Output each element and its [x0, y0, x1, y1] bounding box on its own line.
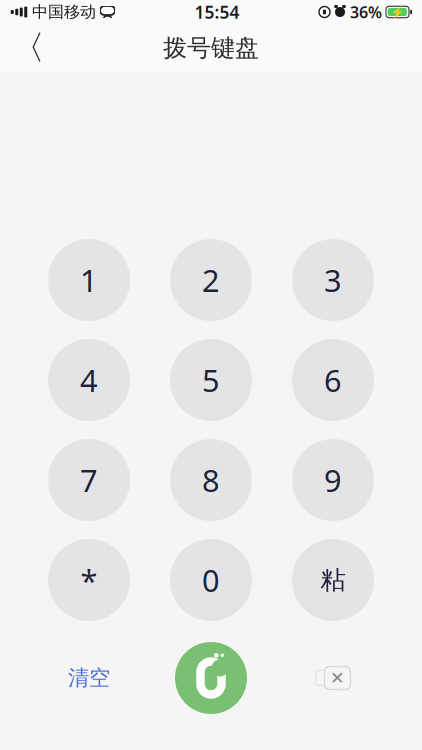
staticText: 9	[324, 460, 342, 500]
staticText: 中国移动	[32, 2, 96, 22]
button[interactable]: 5	[170, 339, 252, 421]
button[interactable]: 3	[292, 239, 374, 321]
staticText: 清空	[68, 665, 110, 691]
staticText: 1	[80, 260, 98, 300]
button[interactable]: 7	[48, 439, 130, 521]
staticText: ✕	[330, 668, 345, 688]
staticText: ⚡	[391, 6, 404, 18]
button[interactable]: 8	[170, 439, 252, 521]
staticText: 3	[324, 260, 342, 300]
button[interactable]: 1	[48, 239, 130, 321]
button[interactable]: Back	[6, 26, 50, 70]
button[interactable]: 6	[292, 339, 374, 421]
button[interactable]: 清空	[48, 642, 130, 714]
button[interactable]: 0	[170, 539, 252, 621]
staticText: 6	[324, 360, 342, 400]
button[interactable]: 2	[170, 239, 252, 321]
staticText: 2	[202, 260, 220, 300]
button[interactable]: Call	[170, 642, 252, 714]
staticText: 15:54	[194, 0, 239, 23]
staticText: 8	[202, 460, 220, 500]
staticText: *	[80, 560, 97, 600]
staticText: 〈	[11, 27, 44, 68]
staticText: 粘	[320, 564, 345, 595]
button[interactable]: 9	[292, 439, 374, 521]
staticText: 7	[80, 460, 98, 500]
staticText: 5	[202, 360, 220, 400]
button[interactable]: Delete	[292, 642, 374, 714]
button[interactable]: 粘	[292, 539, 374, 621]
staticText: 4	[80, 360, 98, 400]
staticText: 36%	[350, 1, 382, 23]
staticText: 0	[202, 560, 220, 600]
staticText: 拨号键盘	[163, 33, 259, 63]
button[interactable]: *	[48, 539, 130, 621]
button[interactable]: 4	[48, 339, 130, 421]
